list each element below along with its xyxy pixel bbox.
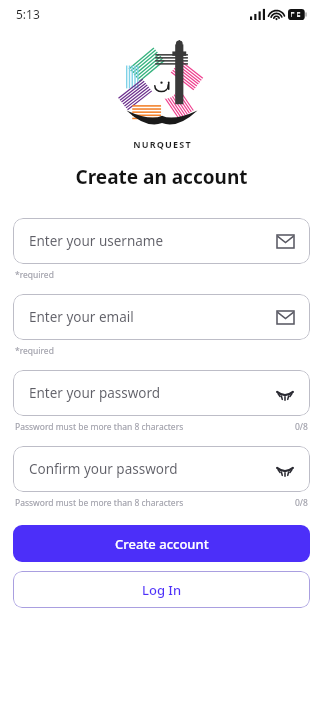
other: Email — [277, 311, 294, 324]
other: Show password — [276, 387, 294, 400]
staticText: Enter your password — [29, 384, 161, 402]
staticText: Password must be more than 8 characters — [15, 497, 184, 509]
staticText: Enter your username — [29, 232, 164, 250]
staticText: Log In — [142, 581, 182, 599]
button[interactable]: Enter your username — [13, 218, 310, 264]
other: Email — [277, 235, 294, 248]
staticText: Password must be more than 8 characters — [15, 421, 184, 433]
staticText: Create an account — [75, 164, 248, 190]
staticText: Create account — [115, 535, 209, 553]
staticText: 0/8 — [295, 421, 308, 433]
button[interactable]: Log In — [13, 571, 310, 608]
staticText: 5:13 — [16, 6, 40, 22]
button[interactable]: Create account — [13, 525, 310, 562]
staticText: *required — [15, 345, 54, 357]
button[interactable]: Confirm your password — [13, 446, 310, 492]
other: Show password — [276, 463, 294, 476]
staticText: *required — [15, 269, 54, 281]
button[interactable]: Enter your password — [13, 370, 310, 416]
staticText: Enter your email — [29, 308, 134, 326]
staticText: 0/8 — [295, 497, 308, 509]
staticText: Confirm your password — [29, 460, 178, 478]
staticText: NURQUEST — [133, 138, 192, 150]
button[interactable]: Enter your email — [13, 294, 310, 340]
